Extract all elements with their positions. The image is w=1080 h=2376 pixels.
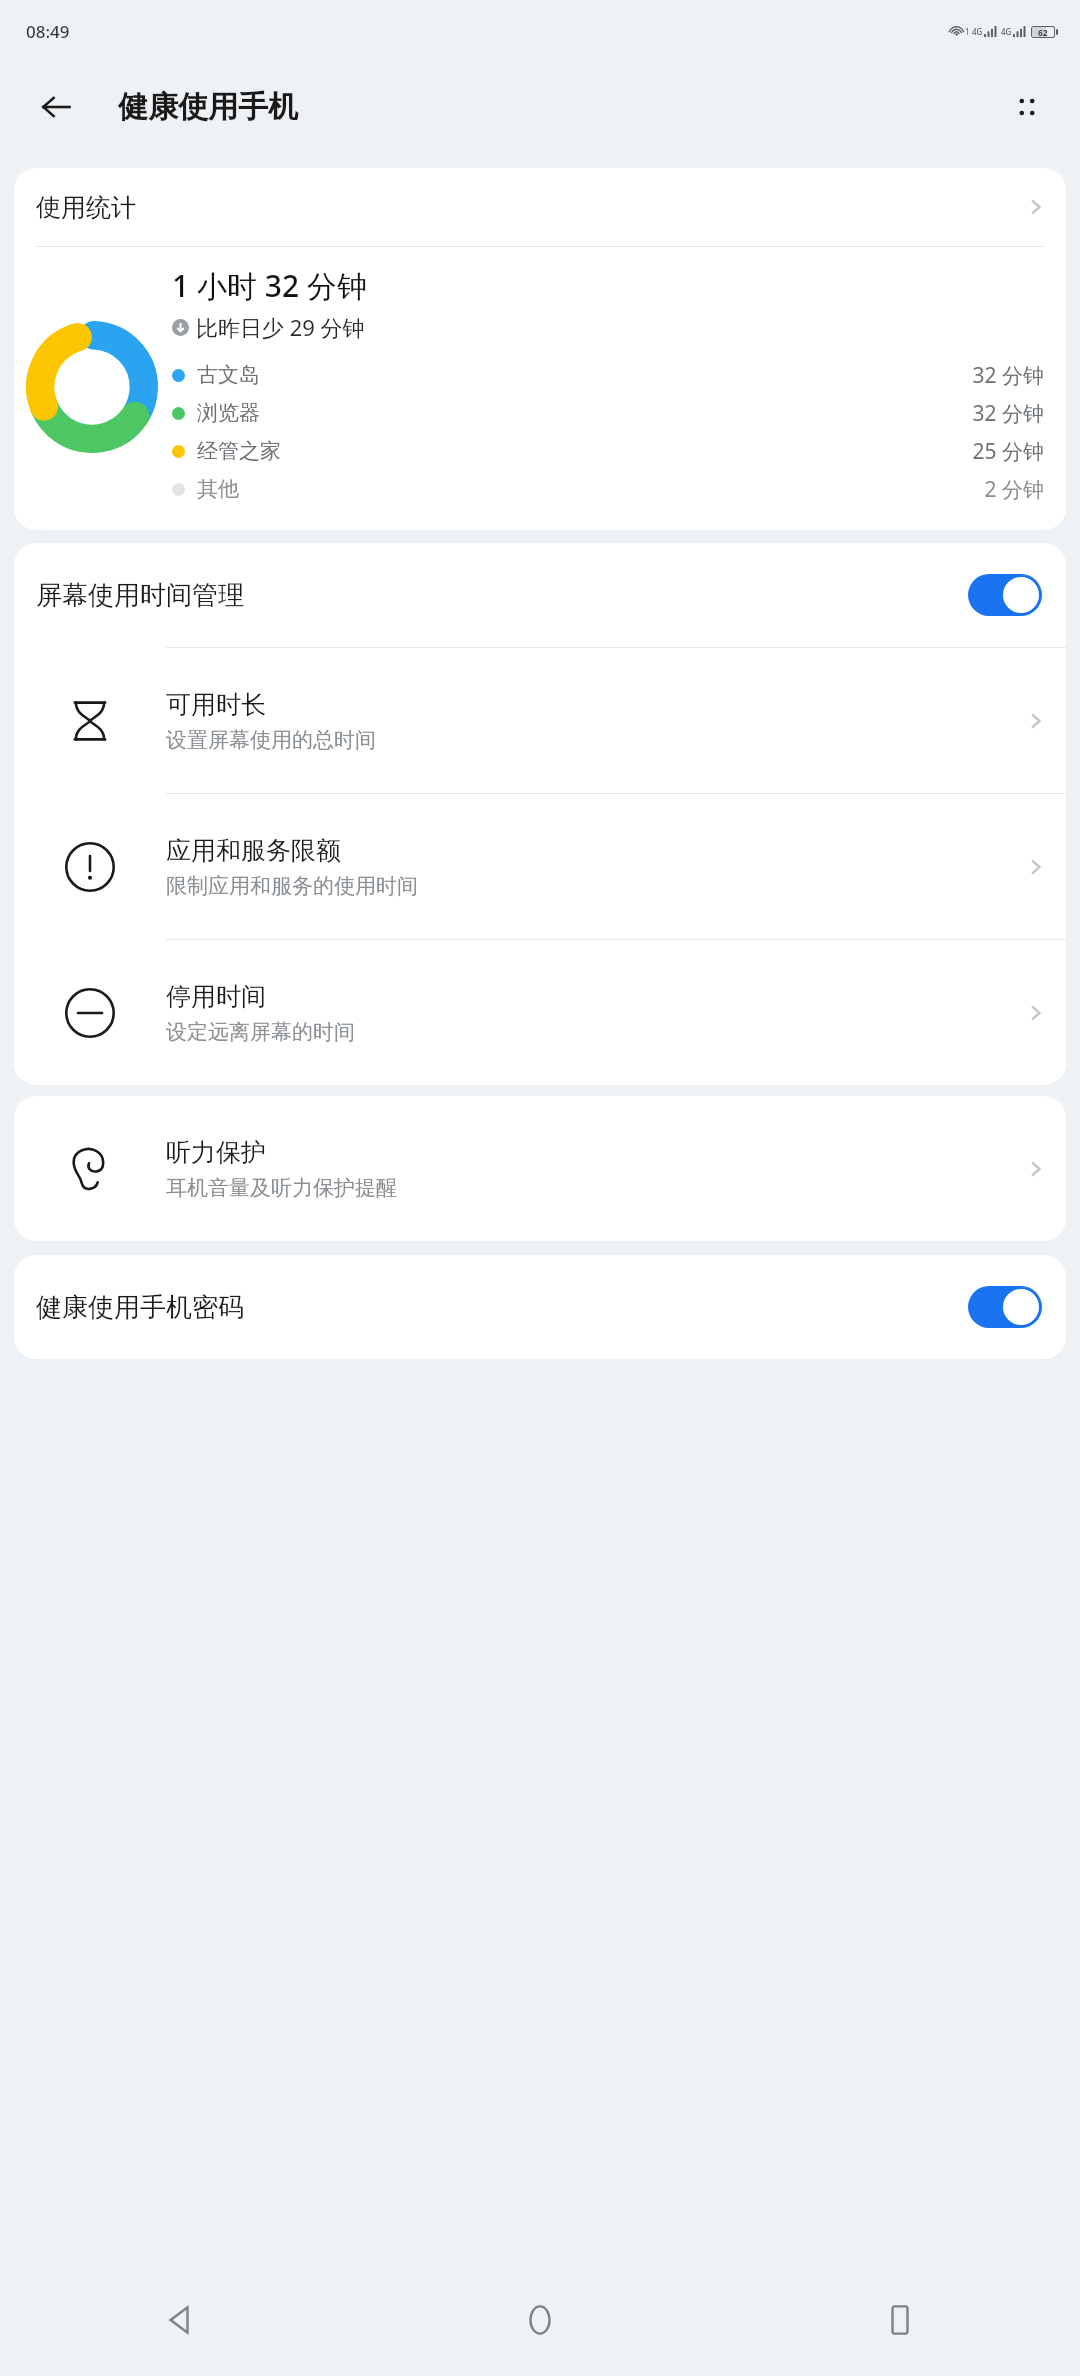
button[interactable]: 应用和服务限额 xyxy=(14,794,1066,939)
button[interactable]: Back xyxy=(0,2264,360,2376)
button[interactable]: 可用时长 xyxy=(14,648,1066,793)
button[interactable]: Recent apps xyxy=(720,2264,1080,2376)
button[interactable]: Toggle on xyxy=(968,1286,1042,1328)
staticText: 可用时长 xyxy=(166,689,266,720)
staticText: 4G xyxy=(972,26,983,37)
button[interactable]: 停用时间 xyxy=(14,940,1066,1085)
staticText: 32 分钟 xyxy=(972,361,1044,390)
button[interactable]: 健康使用手机密码 xyxy=(14,1255,1066,1359)
staticText: 经管之家 xyxy=(197,438,281,464)
staticText: 健康使用手机密码 xyxy=(36,1291,244,1324)
button[interactable]: 使用统计 xyxy=(14,168,1066,246)
staticText: 2 分钟 xyxy=(984,475,1044,504)
staticText: 其他 xyxy=(197,476,239,502)
staticText: 设置屏幕使用的总时间 xyxy=(166,727,376,753)
button[interactable]: 听力保护 xyxy=(14,1096,1066,1241)
button[interactable]: Toggle on xyxy=(968,574,1042,616)
button[interactable]: Back xyxy=(30,81,82,133)
staticText: 限制应用和服务的使用时间 xyxy=(166,873,418,899)
staticText: 比昨日少 29 分钟 xyxy=(196,312,365,342)
staticText: 使用统计 xyxy=(36,192,136,223)
staticText: 设定远离屏幕的时间 xyxy=(166,1019,355,1045)
staticText: 耳机音量及听力保护提醒 xyxy=(166,1175,397,1201)
staticText: 25 分钟 xyxy=(972,437,1044,466)
staticText: 1 xyxy=(965,26,970,37)
staticText: 4G xyxy=(1001,26,1012,37)
staticText: 应用和服务限额 xyxy=(166,835,341,866)
staticText: 古文岛 xyxy=(197,362,260,388)
staticText: 62 xyxy=(1038,27,1048,37)
staticText: 听力保护 xyxy=(166,1137,266,1168)
button[interactable]: More options xyxy=(1000,80,1054,134)
staticText: 1 小时 32 分钟 xyxy=(172,265,367,306)
staticText: 浏览器 xyxy=(197,400,260,426)
staticText: 08:49 xyxy=(26,20,70,43)
staticText: 停用时间 xyxy=(166,981,266,1012)
button[interactable]: Home xyxy=(360,2264,720,2376)
staticText: 屏幕使用时间管理 xyxy=(36,579,244,612)
staticText: 32 分钟 xyxy=(972,399,1044,428)
button[interactable]: 屏幕使用时间管理 xyxy=(14,543,1066,647)
staticText: 健康使用手机 xyxy=(118,88,298,126)
